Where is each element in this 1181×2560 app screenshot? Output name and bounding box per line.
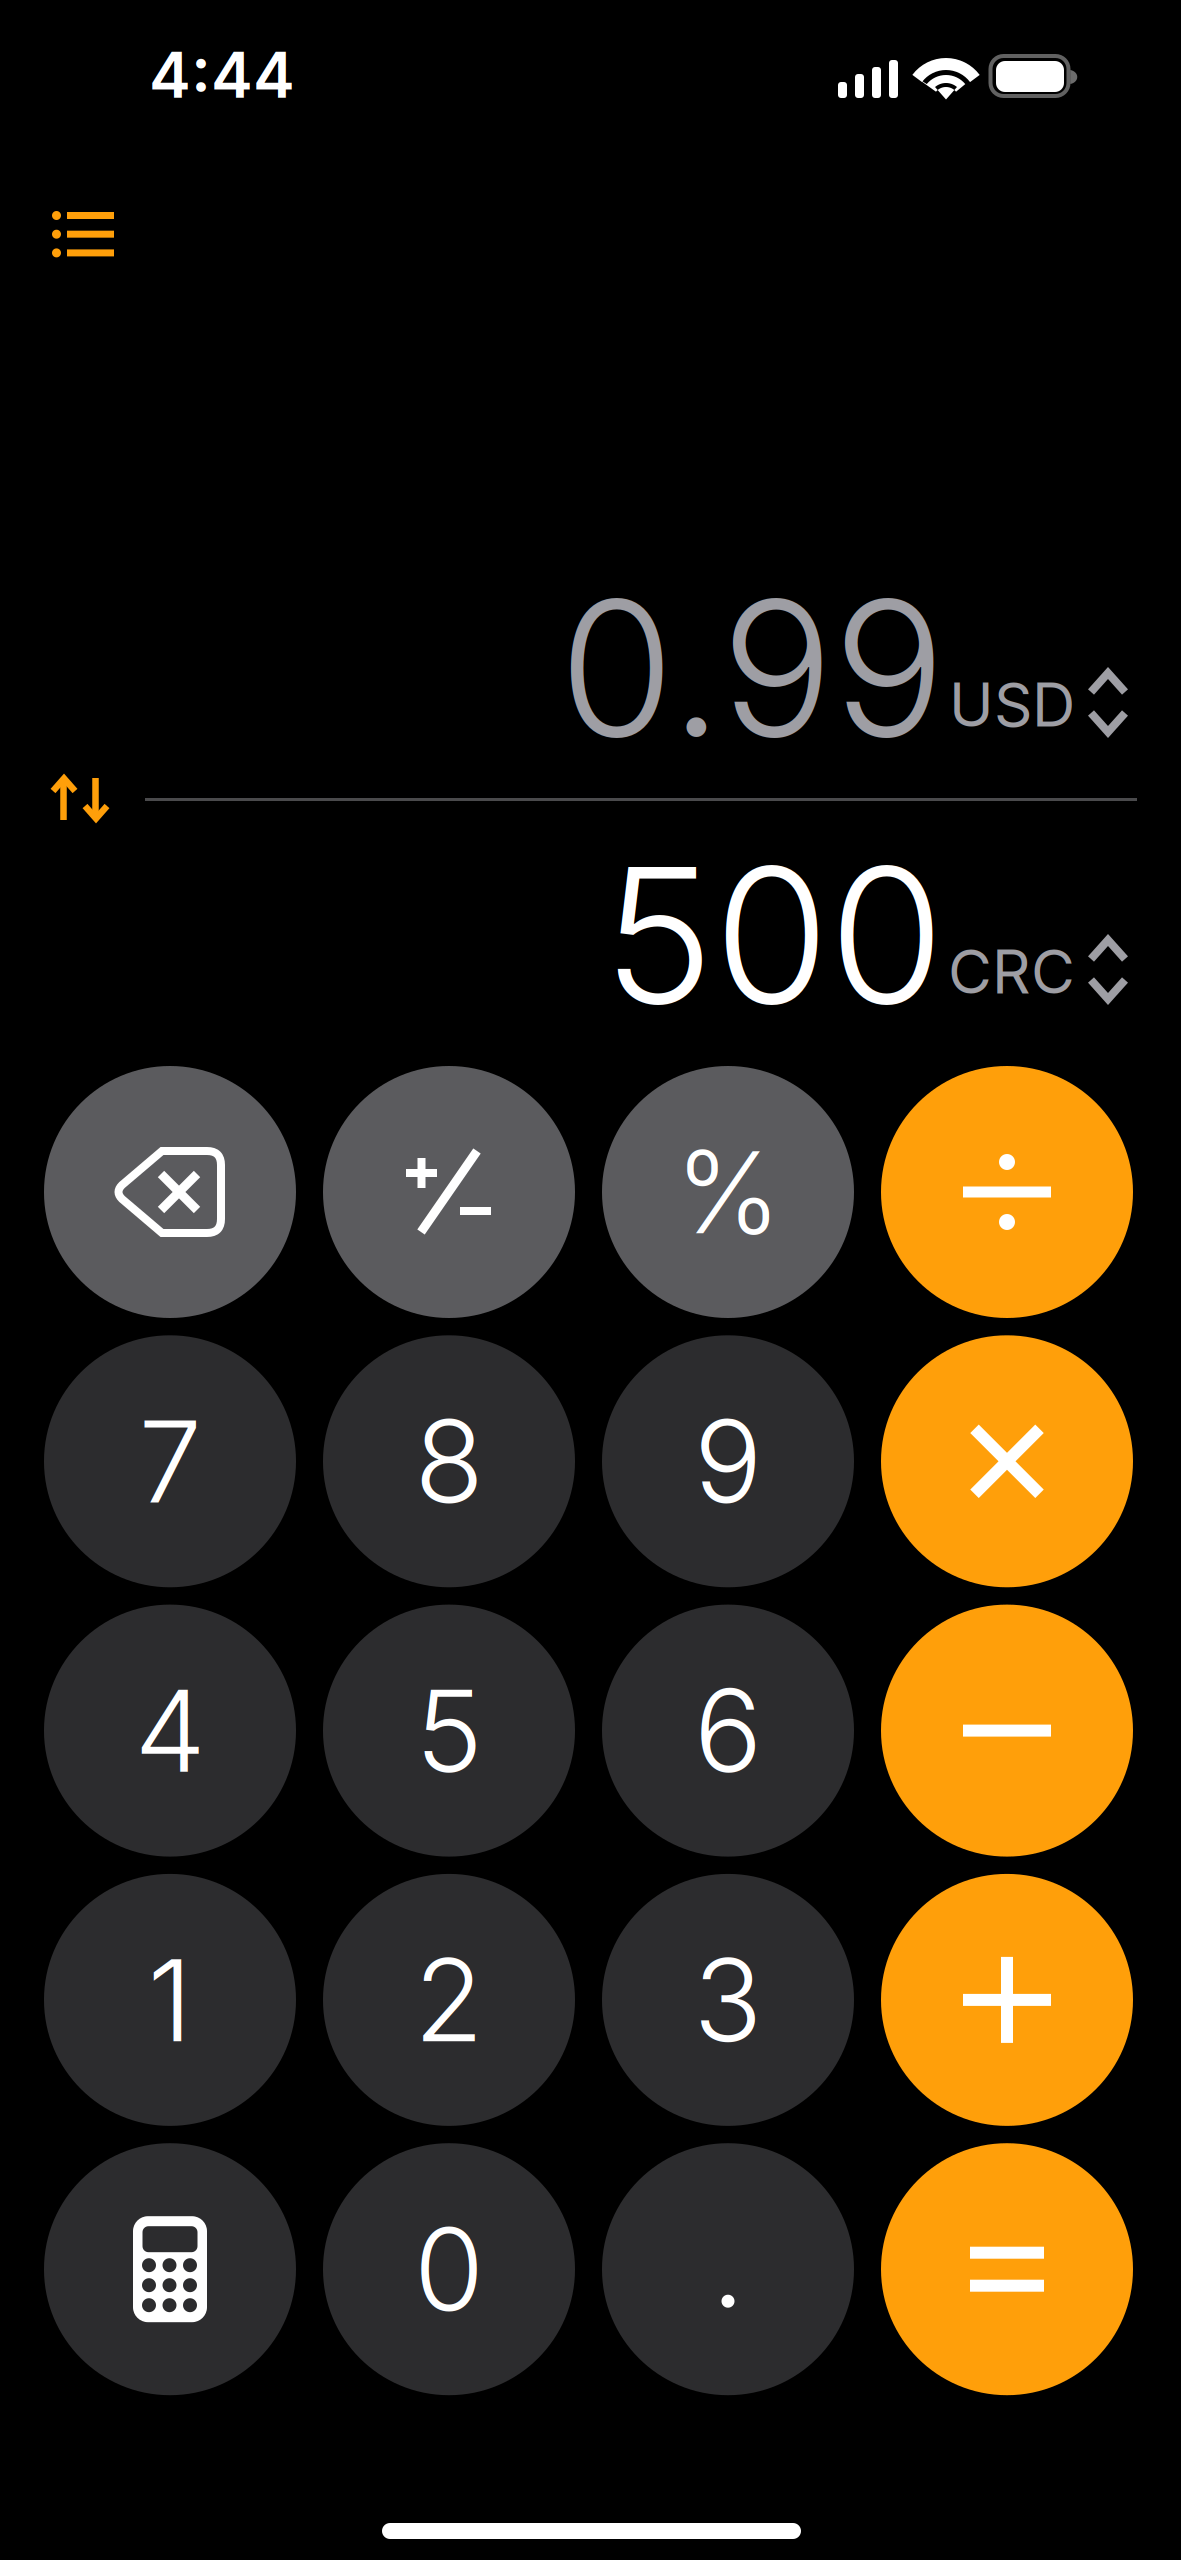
button[interactable]: Delete — [44, 1066, 296, 1318]
staticText: 5 — [415, 1662, 482, 1799]
staticText: USD — [949, 668, 1075, 741]
staticText: 6 — [694, 1662, 762, 1799]
staticText: % — [675, 1123, 781, 1260]
button[interactable]: Decimal point — [602, 2143, 854, 2395]
button[interactable]: Percent — [602, 1066, 854, 1318]
staticText: 7 — [138, 1393, 201, 1530]
button[interactable]: 2 — [323, 1874, 575, 2126]
button[interactable]: Multiply — [881, 1335, 1133, 1587]
staticText: 8 — [414, 1393, 483, 1530]
button[interactable]: 7 — [44, 1335, 296, 1587]
button[interactable]: 9 — [602, 1335, 854, 1587]
button[interactable]: 0 — [323, 2143, 575, 2395]
staticText: 0.99 — [559, 555, 945, 781]
button[interactable]: 5 — [323, 1605, 575, 1857]
button[interactable]: Plus — [881, 1874, 1133, 2126]
button[interactable]: Equals — [881, 2143, 1133, 2395]
staticText: 9 — [694, 1393, 762, 1530]
staticText: 3 — [693, 1931, 762, 2068]
staticText: 4 — [134, 1662, 205, 1799]
button[interactable]: Result currency USD — [0, 581, 1113, 781]
staticText: 2 — [414, 1931, 484, 2068]
button[interactable]: 8 — [323, 1335, 575, 1587]
button[interactable]: 4 — [44, 1605, 296, 1857]
staticText: 4:44 — [149, 37, 295, 113]
button[interactable]: Calculator — [44, 2143, 296, 2395]
staticText: 500 — [603, 822, 944, 1048]
button[interactable]: Swap currencies — [30, 754, 130, 843]
button[interactable]: 6 — [602, 1605, 854, 1857]
button[interactable]: Input currency CRC — [0, 848, 1113, 1048]
staticText: 0 — [414, 2201, 484, 2338]
button[interactable]: Divide — [881, 1066, 1133, 1318]
button[interactable]: Minus — [881, 1605, 1133, 1857]
button[interactable]: 1 — [44, 1874, 296, 2126]
button[interactable]: History — [34, 193, 132, 275]
button[interactable]: Plus minus — [323, 1066, 575, 1318]
button[interactable]: 3 — [602, 1874, 854, 2126]
staticText: CRC — [948, 935, 1075, 1008]
staticText: 1 — [147, 1931, 192, 2068]
